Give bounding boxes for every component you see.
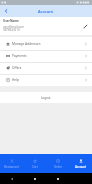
- button[interactable]: Payments: [0, 50, 92, 62]
- other: Recents: [56, 177, 60, 181]
- staticText: Account: [38, 9, 54, 14]
- staticText: UserName: [3, 19, 19, 23]
- button[interactable]: Restaurant: [0, 154, 23, 173]
- staticText: Logout: [41, 96, 51, 100]
- button[interactable]: Account: [69, 154, 92, 173]
- staticText: Restaurant: [4, 165, 19, 169]
- button[interactable]: Offers: [0, 62, 92, 74]
- staticText: user@mail.com: [3, 25, 25, 29]
- staticText: Order: [54, 165, 62, 169]
- staticText: Offers: [12, 66, 22, 70]
- button[interactable]: Manage Addresses: [0, 37, 92, 50]
- other: Home: [33, 177, 37, 181]
- button[interactable]: Edit profile: [81, 22, 90, 31]
- button[interactable]: Help: [0, 74, 92, 86]
- other: Back: [10, 177, 14, 181]
- staticText: Help: [12, 78, 19, 82]
- button[interactable]: Order: [46, 154, 69, 173]
- button[interactable]: Logout: [0, 92, 92, 103]
- staticText: Manage Addresses: [12, 42, 41, 46]
- staticText: 9876543210: [3, 28, 20, 32]
- staticText: Payments: [12, 54, 27, 58]
- button[interactable]: Cart: [23, 154, 46, 173]
- staticText: Cart: [32, 165, 38, 169]
- button[interactable]: Back: [0, 5, 11, 17]
- staticText: Account: [75, 165, 86, 169]
